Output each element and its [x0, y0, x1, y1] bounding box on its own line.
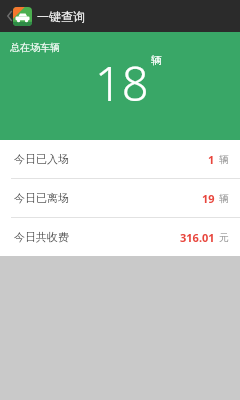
staticText: 19: [202, 191, 215, 206]
staticText: 今日已离场: [14, 191, 69, 205]
staticText: 18: [95, 51, 149, 115]
staticText: 元: [219, 231, 229, 244]
button[interactable]: 今日已入场: [0, 140, 240, 178]
button[interactable]: 今日已离场: [0, 179, 240, 217]
staticText: 今日已入场: [14, 152, 69, 166]
staticText: 辆: [151, 53, 162, 67]
staticText: 今日共收费: [14, 230, 69, 244]
button[interactable]: 今日共收费: [0, 218, 240, 256]
staticText: 辆: [219, 153, 229, 166]
other: App icon: [13, 7, 32, 26]
staticText: 一键查询: [37, 9, 85, 24]
staticText: 1: [208, 152, 215, 167]
staticText: 总在场车辆: [10, 41, 60, 54]
staticText: 316.01: [180, 230, 215, 245]
staticText: 辆: [219, 192, 229, 205]
